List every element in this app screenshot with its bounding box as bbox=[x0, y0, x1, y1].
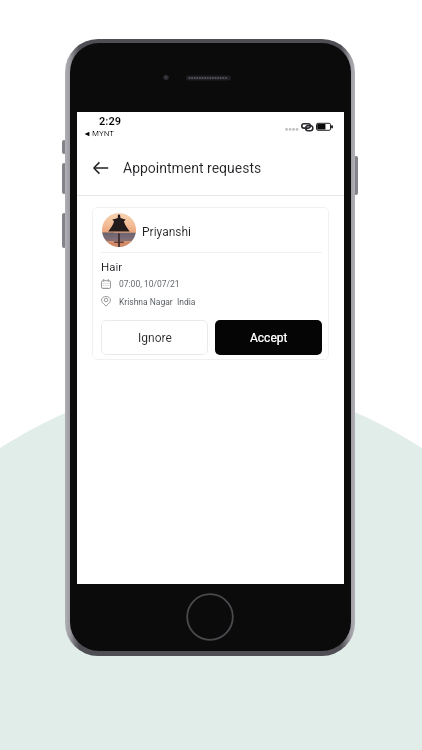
staticText: 2:29 bbox=[99, 115, 122, 128]
staticText: Appointment requests bbox=[123, 160, 262, 176]
staticText: Priyanshi bbox=[142, 225, 192, 239]
staticText: MYNT bbox=[92, 129, 115, 138]
button[interactable]: Back bbox=[85, 152, 117, 184]
button[interactable]: Accept bbox=[215, 320, 322, 355]
staticText: Krishna Nagar India bbox=[119, 297, 196, 307]
staticText: Hair bbox=[101, 260, 123, 273]
staticText: 07:00, 10/07/21 bbox=[119, 279, 180, 289]
staticText: Accept bbox=[250, 331, 288, 345]
staticText: Ignore bbox=[138, 331, 172, 345]
button[interactable]: Ignore bbox=[101, 320, 208, 355]
button[interactable]: Priyanshi bbox=[92, 207, 329, 360]
